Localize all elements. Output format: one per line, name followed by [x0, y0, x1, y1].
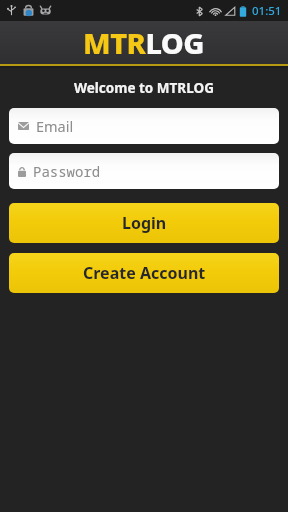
staticText: Password: [33, 162, 101, 181]
button[interactable]: Email: [9, 108, 279, 144]
staticText: Welcome to MTRLOG: [74, 79, 214, 97]
staticText: Create Account: [83, 262, 206, 284]
staticText: 01:51: [252, 3, 282, 19]
button[interactable]: Create Account: [9, 253, 279, 293]
staticText: MTRLOG: [83, 23, 205, 62]
staticText: Email: [36, 116, 74, 136]
staticText: Login: [122, 212, 167, 234]
button[interactable]: Password: [9, 153, 279, 189]
button[interactable]: Login: [9, 203, 279, 243]
